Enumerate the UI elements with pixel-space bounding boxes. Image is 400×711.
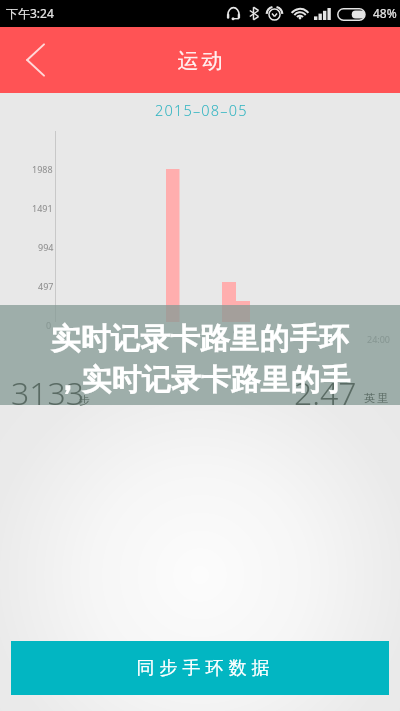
staticText: 0 — [46, 319, 52, 331]
staticText: 2.47 — [294, 371, 357, 415]
staticText: 1491 — [32, 202, 53, 214]
staticText: 994 — [38, 241, 54, 253]
staticText: 497 — [38, 280, 54, 292]
staticText: 英里 — [363, 391, 389, 405]
button[interactable]: 同步手环数据 — [11, 641, 389, 695]
staticText: 1988 — [32, 163, 53, 175]
staticText: 同步手环数据 — [134, 657, 272, 680]
staticText: 实时记录卡路里的手环 — [51, 320, 349, 358]
button[interactable]: Back — [12, 36, 60, 84]
staticText: 48% — [373, 5, 397, 21]
staticText: 3133 — [11, 371, 85, 415]
staticText: 运动 — [176, 48, 224, 74]
staticText: 步 — [79, 393, 90, 407]
staticText: ，实时记录卡路里的手 — [52, 361, 350, 399]
staticText: 24:00 — [367, 333, 391, 345]
staticText: 下午3:24 — [6, 5, 54, 21]
staticText: 2015–08–05 — [155, 100, 248, 120]
